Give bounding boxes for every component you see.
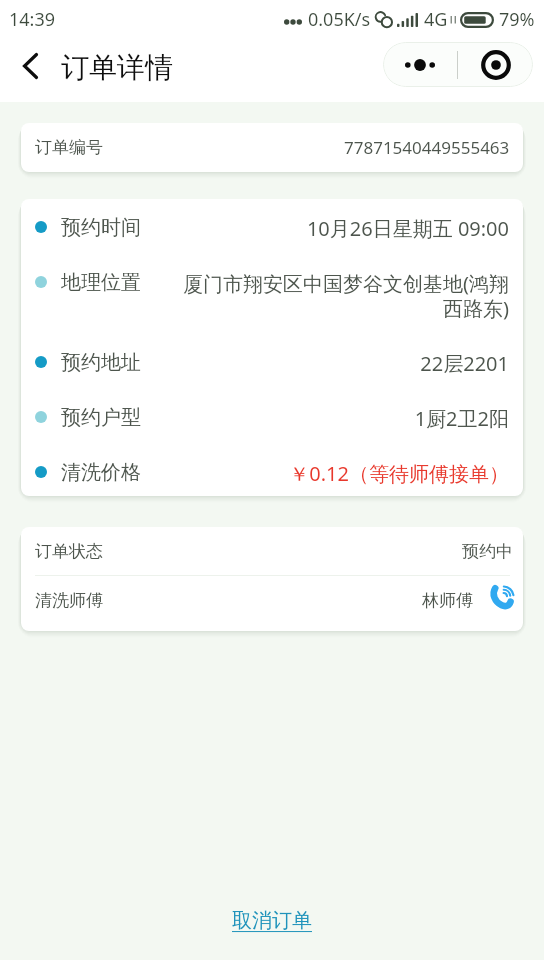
staticText: 77871540449555463 <box>344 136 510 159</box>
button[interactable]: Close <box>458 42 533 87</box>
button[interactable]: More <box>383 42 457 87</box>
staticText: 10月26日星期五 09:00 <box>306 215 509 242</box>
staticText: 预约户型 <box>61 405 141 430</box>
staticText: 0.05K/s <box>308 7 371 32</box>
staticText: 预约中 <box>462 541 513 562</box>
staticText: 地理位置 <box>61 270 141 295</box>
staticText: 厦门市翔安区中国梦谷文创基地(鸿翔西路东) <box>173 270 509 322</box>
staticText: 预约时间 <box>61 215 141 240</box>
staticText: 预约地址 <box>61 350 141 375</box>
staticText: 取消订单 <box>232 908 312 933</box>
button[interactable]: Back <box>8 44 52 88</box>
staticText: 14:39 <box>9 7 56 32</box>
button[interactable]: Call <box>490 583 516 609</box>
staticText: 22层2201 <box>420 350 509 377</box>
button[interactable]: 取消订单 <box>220 903 324 938</box>
staticText: 订单状态 <box>35 541 103 562</box>
staticText: 清洗价格 <box>61 460 141 485</box>
staticText: 订单编号 <box>35 137 103 158</box>
staticText: ￥0.12（等待师傅接单） <box>289 460 509 487</box>
staticText: 林师傅 <box>422 590 473 611</box>
staticText: 1厨2卫2阳 <box>414 405 509 432</box>
staticText: 79% <box>499 7 535 32</box>
staticText: 订单详情 <box>61 50 173 85</box>
staticText: 4G <box>424 7 448 32</box>
staticText: 清洗师傅 <box>35 590 103 611</box>
